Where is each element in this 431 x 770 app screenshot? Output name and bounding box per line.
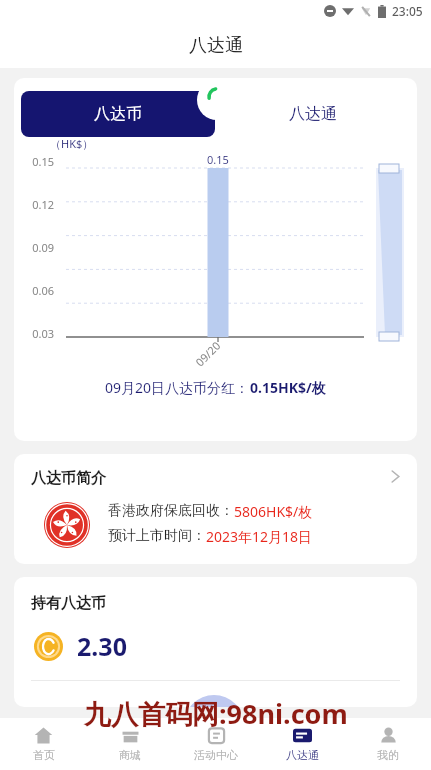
staticText: 23:05 <box>392 3 423 19</box>
staticText: 0.15 <box>14 154 54 169</box>
staticText: 活动中心 <box>194 748 238 762</box>
staticText: 我的 <box>377 748 399 762</box>
staticText: 八达币 <box>94 104 142 124</box>
button[interactable]: 活动中心 <box>173 718 259 770</box>
staticText: 2.30 <box>77 629 127 663</box>
staticText: 商城 <box>119 748 141 762</box>
button[interactable]: 八达通 <box>259 718 345 770</box>
staticText: 八达通 <box>289 104 337 124</box>
staticText: 0.15HK$/枚 <box>250 378 326 397</box>
button[interactable]: 我的 <box>345 718 431 770</box>
staticText: 0.09 <box>14 240 54 255</box>
button[interactable]: 八达通 <box>215 91 410 137</box>
staticText: 0.06 <box>14 283 54 298</box>
staticText: 八达通 <box>189 34 243 57</box>
staticText: 0.15 <box>207 152 229 167</box>
staticText: 香港政府保底回收： <box>108 502 234 520</box>
button[interactable]: 八达币 <box>21 91 215 137</box>
button[interactable]: 八达币简介 <box>14 454 417 564</box>
staticText: 2023年12月18日 <box>206 527 313 546</box>
staticText: 预计上市时间： <box>108 527 206 545</box>
staticText: 八达通 <box>286 748 319 762</box>
staticText: 09/20 <box>192 338 224 369</box>
other: Loading <box>197 80 237 120</box>
button[interactable]: 首页 <box>0 718 87 770</box>
staticText: 0.03 <box>14 326 54 341</box>
staticText: 九八首码网:98ni.com <box>84 695 348 732</box>
staticText: 八达币简介 <box>31 469 106 488</box>
staticText: 5806HK$/枚 <box>234 502 313 521</box>
staticText: （HK$） <box>50 136 94 151</box>
staticText: 首页 <box>33 748 55 762</box>
staticText: 09月20日八达币分红： <box>105 378 250 397</box>
staticText: 0.12 <box>14 197 54 212</box>
staticText: 持有八达币 <box>31 594 106 613</box>
button[interactable]: 商城 <box>87 718 173 770</box>
